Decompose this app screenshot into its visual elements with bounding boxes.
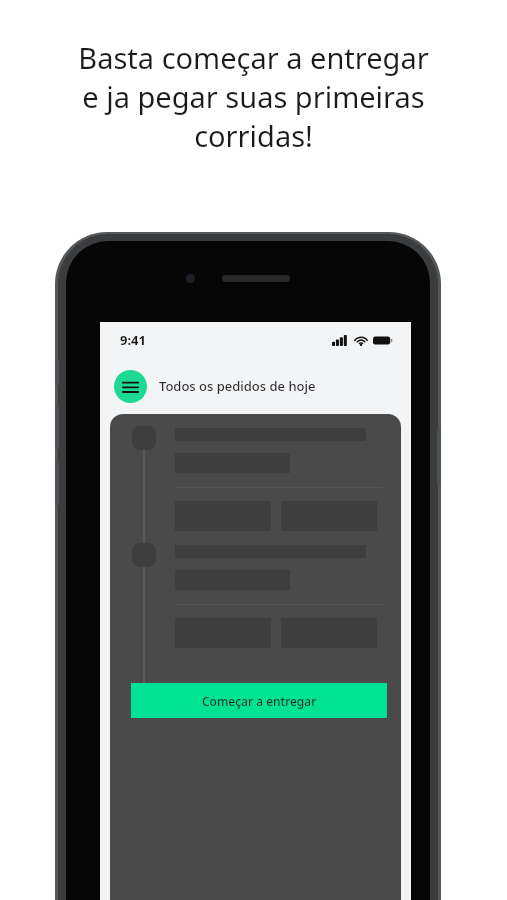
- staticText: Basta começar a entregar e ja pegar suas…: [18, 38, 489, 155]
- staticText: Começar a entregar: [202, 693, 317, 709]
- staticText: 9:41: [120, 331, 146, 349]
- button[interactable]: Começar a entregar: [131, 683, 387, 718]
- button[interactable]: Menu: [114, 370, 147, 403]
- staticText: Todos os pedidos de hoje: [159, 377, 316, 395]
